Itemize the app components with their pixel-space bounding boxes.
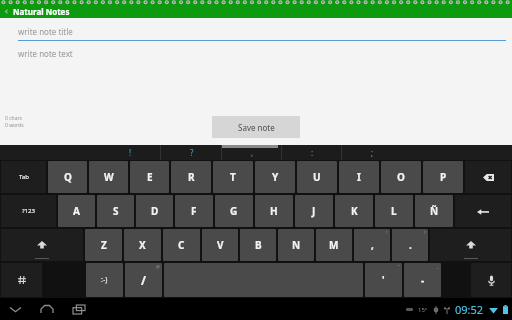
staticText: W: [104, 170, 114, 184]
staticText: ?: [190, 147, 194, 158]
button[interactable]: F: [175, 195, 213, 227]
button[interactable]: ': [365, 263, 402, 297]
staticText: J: [312, 204, 316, 218]
staticText: X: [139, 238, 146, 252]
staticText: Tab: [19, 173, 29, 181]
staticText: O: [397, 170, 405, 184]
staticText: Z: [101, 238, 107, 252]
button[interactable]: Z: [85, 229, 122, 261]
button[interactable]: Save note: [212, 116, 300, 138]
staticText: 0 chars: [5, 115, 22, 122]
button[interactable]: :-): [86, 263, 123, 297]
button[interactable]: ,: [354, 229, 390, 261]
staticText: K: [351, 204, 358, 218]
staticText: ?: [424, 230, 426, 235]
staticText: :: [311, 147, 314, 158]
button[interactable]: A: [58, 195, 95, 227]
staticText: Ñ: [430, 204, 439, 218]
button[interactable]: ;: [342, 145, 402, 160]
staticText: ': [382, 273, 385, 287]
staticText: H: [270, 204, 278, 218]
staticText: P: [440, 170, 447, 184]
staticText: R: [188, 170, 195, 184]
button[interactable]: Ñ: [415, 195, 453, 227]
staticText: Save note: [238, 122, 275, 133]
button[interactable]: R: [171, 161, 211, 193]
button[interactable]: X: [124, 229, 161, 261]
button[interactable]: E: [130, 161, 169, 193]
button[interactable]: S: [97, 195, 134, 227]
button[interactable]: write note title: [18, 26, 506, 41]
staticText: Natural Notes: [13, 6, 70, 17]
button[interactable]: Shift: [1, 229, 83, 261]
staticText: D: [151, 204, 159, 218]
staticText: N: [292, 238, 301, 252]
staticText: 15°: [418, 306, 428, 314]
staticText: Y: [272, 170, 279, 184]
staticText: 0 words: [5, 122, 24, 129]
staticText: ?123: [22, 207, 35, 215]
button[interactable]: K: [335, 195, 373, 227]
staticText: ,: [371, 238, 374, 252]
staticText: !: [129, 147, 132, 158]
staticText: /: [141, 272, 146, 288]
button[interactable]: .: [392, 229, 428, 261]
button[interactable]: D: [136, 195, 173, 227]
staticText: E: [147, 170, 153, 184]
staticText: A: [73, 204, 80, 218]
button[interactable]: /: [125, 263, 162, 297]
button[interactable]: V: [202, 229, 238, 261]
button[interactable]: W: [89, 161, 128, 193]
button[interactable]: B: [240, 229, 276, 261]
button[interactable]: C: [163, 229, 200, 261]
button[interactable]: Tab: [1, 161, 46, 193]
button[interactable]: N: [278, 229, 314, 261]
button[interactable]: J: [295, 195, 333, 227]
staticText: .: [409, 238, 412, 252]
button[interactable]: I: [339, 161, 379, 193]
button[interactable]: Back: [6, 300, 24, 318]
button[interactable]: Home: [38, 300, 56, 318]
button[interactable]: -: [404, 263, 441, 297]
button[interactable]: L: [375, 195, 413, 227]
button[interactable]: U: [297, 161, 337, 193]
button[interactable]: Shift: [430, 229, 511, 261]
button[interactable]: Y: [255, 161, 295, 193]
button[interactable]: G: [215, 195, 253, 227]
staticText: U: [313, 170, 321, 184]
button[interactable]: Recent apps: [70, 300, 88, 318]
staticText: -: [421, 273, 425, 287]
button[interactable]: Input settings: [1, 263, 42, 297]
button[interactable]: ?123: [1, 195, 56, 227]
staticText: write note text: [18, 48, 73, 59]
staticText: ": [398, 264, 400, 269]
button[interactable]: !: [100, 145, 161, 160]
staticText: C: [178, 238, 185, 252]
staticText: @: [156, 264, 160, 269]
button[interactable]: M: [316, 229, 352, 261]
staticText: :-): [101, 275, 108, 285]
button[interactable]: O: [381, 161, 421, 193]
staticText: T: [230, 170, 236, 184]
button[interactable]: write note text: [18, 48, 506, 145]
staticText: F: [191, 204, 197, 218]
button[interactable]: ?: [161, 145, 222, 160]
button[interactable]: H: [255, 195, 293, 227]
button[interactable]: Voice input: [471, 263, 511, 297]
button[interactable]: Enter: [455, 195, 511, 227]
button[interactable]: P: [423, 161, 463, 193]
staticText: write note title: [18, 26, 73, 37]
button[interactable]: Backspace: [465, 161, 511, 193]
staticText: 09:52: [455, 302, 484, 317]
staticText: B: [255, 238, 262, 252]
staticText: M: [329, 238, 339, 252]
staticText: G: [230, 204, 238, 218]
button[interactable]: T: [213, 161, 253, 193]
button[interactable]: ,: [222, 145, 282, 160]
button[interactable]: Natural Notes: [0, 0, 512, 18]
staticText: V: [217, 238, 224, 252]
button[interactable]: :: [282, 145, 342, 160]
staticText: L: [391, 204, 397, 218]
button[interactable]: Q: [48, 161, 87, 193]
